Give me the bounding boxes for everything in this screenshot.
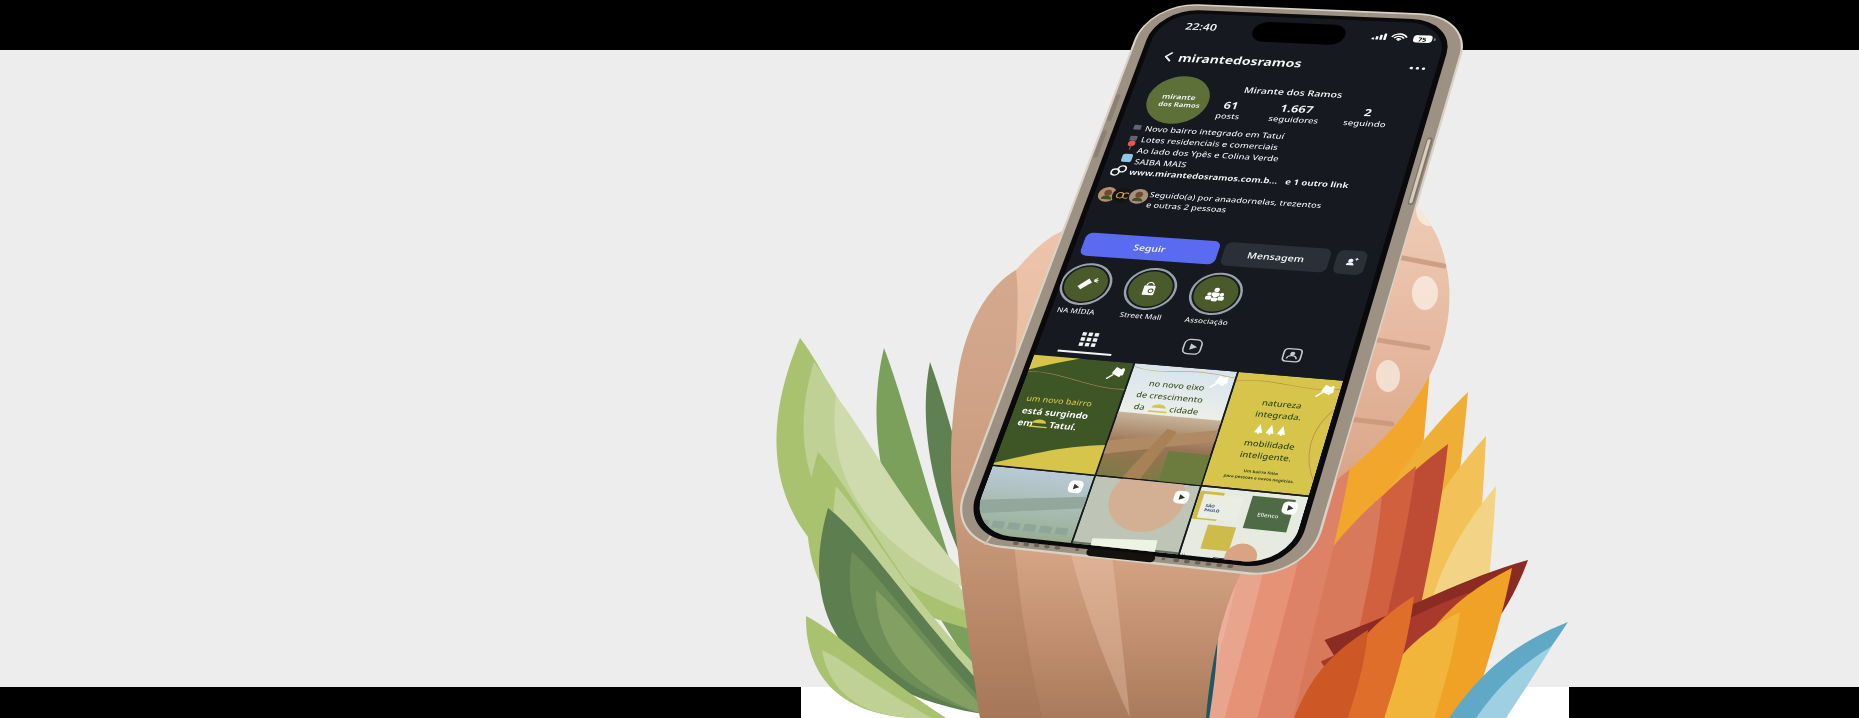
button[interactable]: Mirante dos Ramos Instagram profile prom… <box>0 0 1859 718</box>
